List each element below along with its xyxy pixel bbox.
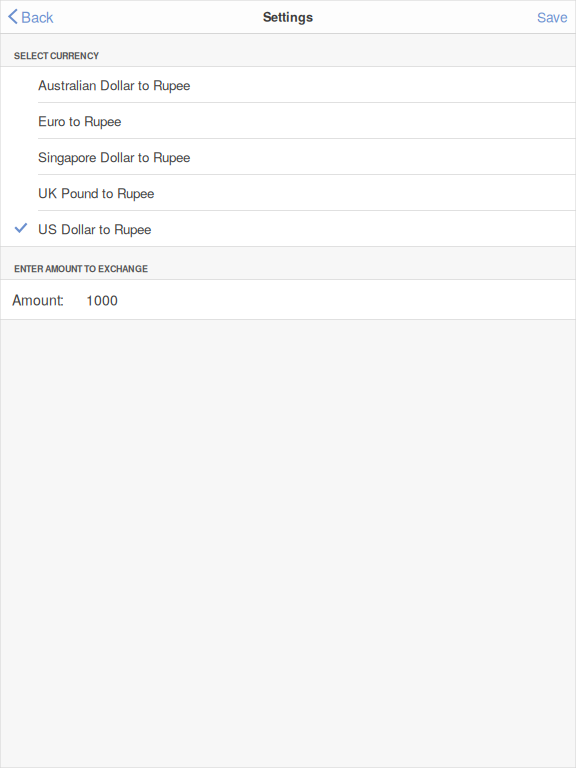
staticText: UK Pound to Rupee bbox=[38, 183, 154, 202]
staticText: Back bbox=[21, 6, 53, 27]
button[interactable]: US Dollar to Rupee bbox=[0, 211, 576, 246]
button[interactable]: Euro to Rupee bbox=[0, 103, 576, 138]
staticText: SELECT CURRENCY bbox=[14, 49, 99, 62]
staticText: Euro to Rupee bbox=[38, 111, 121, 130]
staticText: ENTER AMOUNT TO EXCHANGE bbox=[14, 262, 148, 275]
button[interactable]: Australian Dollar to Rupee bbox=[0, 67, 576, 102]
staticText: Amount: bbox=[12, 289, 64, 309]
staticText: US Dollar to Rupee bbox=[38, 219, 151, 238]
button[interactable]: Back bbox=[0, 0, 62, 33]
button[interactable]: Amount: bbox=[0, 280, 576, 319]
staticText: Australian Dollar to Rupee bbox=[38, 75, 190, 94]
button[interactable]: UK Pound to Rupee bbox=[0, 175, 576, 210]
staticText: Singapore Dollar to Rupee bbox=[38, 147, 190, 166]
button[interactable]: Save bbox=[527, 0, 576, 33]
staticText: Settings bbox=[263, 7, 313, 25]
staticText: 1000 bbox=[86, 289, 118, 309]
button[interactable]: Singapore Dollar to Rupee bbox=[0, 139, 576, 174]
staticText: Save bbox=[537, 7, 568, 26]
